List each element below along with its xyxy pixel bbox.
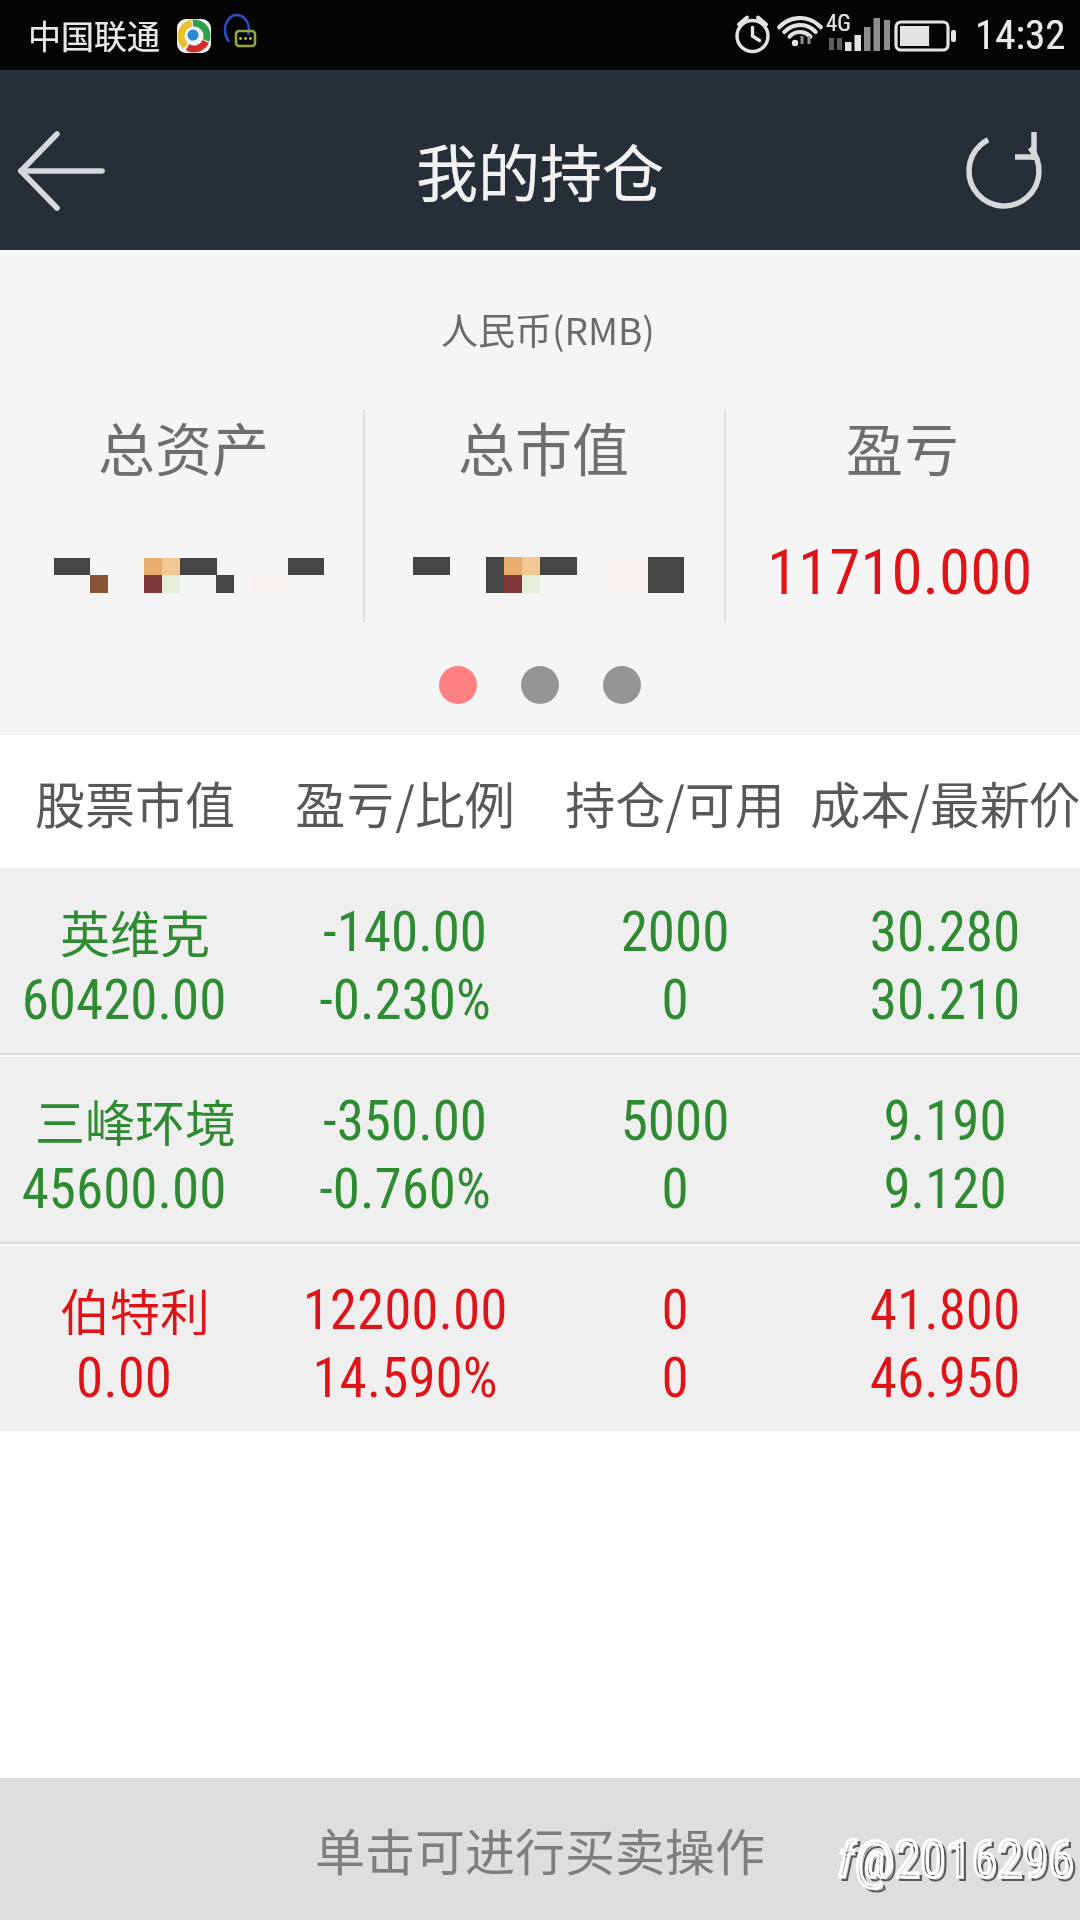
staticText: -350.00 xyxy=(270,1089,540,1151)
staticText: -0.230% xyxy=(270,968,540,1030)
staticText: -140.00 xyxy=(270,900,540,962)
staticText: 14:32 xyxy=(975,11,1066,59)
staticText: 伯特利 xyxy=(0,1273,270,1335)
staticText: 盈亏/比例 xyxy=(270,766,540,838)
staticText: 45600.00 xyxy=(0,1157,259,1219)
button[interactable]: 三峰环境 xyxy=(0,1057,1080,1242)
staticText: 0 xyxy=(540,1346,810,1408)
staticText: 0 xyxy=(540,1157,810,1219)
staticText: 英维克 xyxy=(0,895,270,957)
staticText: 41.800 xyxy=(810,1278,1080,1340)
staticText: 我的持仓 xyxy=(416,125,665,215)
button[interactable]: 英维克 xyxy=(0,868,1080,1053)
staticText: 三峰环境 xyxy=(0,1084,270,1146)
staticText: 11710.000 xyxy=(767,536,1033,610)
staticText: 单击可进行买卖操作 xyxy=(315,1813,765,1885)
staticText: 12200.00 xyxy=(270,1278,540,1340)
button[interactable]: Back xyxy=(0,70,124,250)
staticText: 总市值 xyxy=(458,405,629,488)
button[interactable]: Refresh xyxy=(926,70,1080,250)
staticText: 2000 xyxy=(540,900,810,962)
staticText: 中国联通 xyxy=(28,11,160,59)
staticText: 5000 xyxy=(540,1089,810,1151)
staticText: 46.950 xyxy=(810,1346,1080,1408)
staticText: 4G xyxy=(826,10,851,37)
staticText: 30.280 xyxy=(810,900,1080,962)
staticText: 0 xyxy=(540,968,810,1030)
staticText: 30.210 xyxy=(810,968,1080,1030)
staticText: -0.760% xyxy=(270,1157,540,1219)
staticText: 60420.00 xyxy=(0,968,259,1030)
staticText: 0.00 xyxy=(0,1346,259,1408)
staticText: 盈亏 xyxy=(846,405,960,488)
staticText: 𝑓@2016296 xyxy=(841,1832,1077,1893)
staticText: 14.590% xyxy=(270,1346,540,1408)
staticText: 股票市值 xyxy=(0,766,270,838)
button[interactable]: 单击可进行买卖操作 xyxy=(0,1778,1080,1920)
staticText: 9.190 xyxy=(810,1089,1080,1151)
staticText: 𝑓@2016296 xyxy=(838,1829,1074,1890)
staticText: 成本/最新价 xyxy=(810,766,1080,838)
staticText: 人民币(RMB) xyxy=(441,302,655,356)
staticText: 持仓/可用 xyxy=(540,766,810,838)
staticText: 9.120 xyxy=(810,1157,1080,1219)
staticText: 总资产 xyxy=(98,405,269,488)
staticText: 0 xyxy=(540,1278,810,1340)
button[interactable]: 伯特利 xyxy=(0,1246,1080,1431)
